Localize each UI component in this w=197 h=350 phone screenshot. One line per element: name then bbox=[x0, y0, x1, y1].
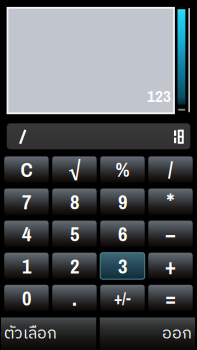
staticText: 4 bbox=[22, 220, 31, 248]
button[interactable]: 2 bbox=[52, 253, 97, 279]
staticText: C bbox=[20, 156, 32, 183]
button[interactable]: √ bbox=[52, 156, 97, 183]
button[interactable]: 7 bbox=[4, 188, 49, 215]
button[interactable]: 0 bbox=[4, 285, 49, 311]
staticText: = bbox=[165, 284, 175, 312]
staticText: √ bbox=[68, 155, 80, 184]
button[interactable]: 4 bbox=[4, 221, 49, 247]
staticText: 1 bbox=[22, 252, 31, 280]
staticText: 0 bbox=[22, 284, 31, 312]
button[interactable]: ตัวเลือก bbox=[1, 317, 96, 350]
button[interactable]: 6 bbox=[100, 221, 145, 247]
button[interactable]: 1 bbox=[4, 253, 49, 279]
staticText: + bbox=[165, 251, 176, 281]
button[interactable]: 3 bbox=[100, 253, 145, 279]
button[interactable]: +/- bbox=[100, 285, 145, 311]
button[interactable]: + bbox=[148, 253, 193, 279]
staticText: 2 bbox=[70, 252, 79, 280]
button[interactable]: = bbox=[148, 285, 193, 311]
button[interactable]: 5 bbox=[52, 221, 97, 247]
staticText: 7 bbox=[22, 188, 31, 216]
staticText: 5 bbox=[70, 220, 79, 248]
button[interactable]: / bbox=[148, 156, 193, 183]
button[interactable]: . bbox=[52, 285, 97, 311]
button[interactable]: 8 bbox=[52, 188, 97, 215]
button[interactable]: % bbox=[100, 156, 145, 183]
staticText: − bbox=[165, 219, 176, 249]
button[interactable]: ออก bbox=[100, 317, 195, 350]
staticText: / bbox=[168, 155, 173, 184]
staticText: 6 bbox=[118, 220, 127, 248]
staticText: * bbox=[166, 186, 174, 218]
button[interactable]: * bbox=[148, 188, 193, 215]
staticText: 3 bbox=[118, 252, 127, 280]
staticText: ออก bbox=[162, 320, 192, 347]
staticText: +/- bbox=[114, 286, 131, 310]
staticText: 123 bbox=[147, 84, 171, 107]
staticText: 8 bbox=[70, 188, 79, 216]
button[interactable]: − bbox=[148, 221, 193, 247]
staticText: % bbox=[115, 157, 129, 183]
staticText: . bbox=[72, 284, 77, 312]
button[interactable]: C bbox=[4, 156, 49, 183]
button[interactable]: 9 bbox=[100, 188, 145, 215]
staticText: 9 bbox=[118, 188, 127, 216]
staticText: ตัวเลือก bbox=[4, 320, 57, 347]
